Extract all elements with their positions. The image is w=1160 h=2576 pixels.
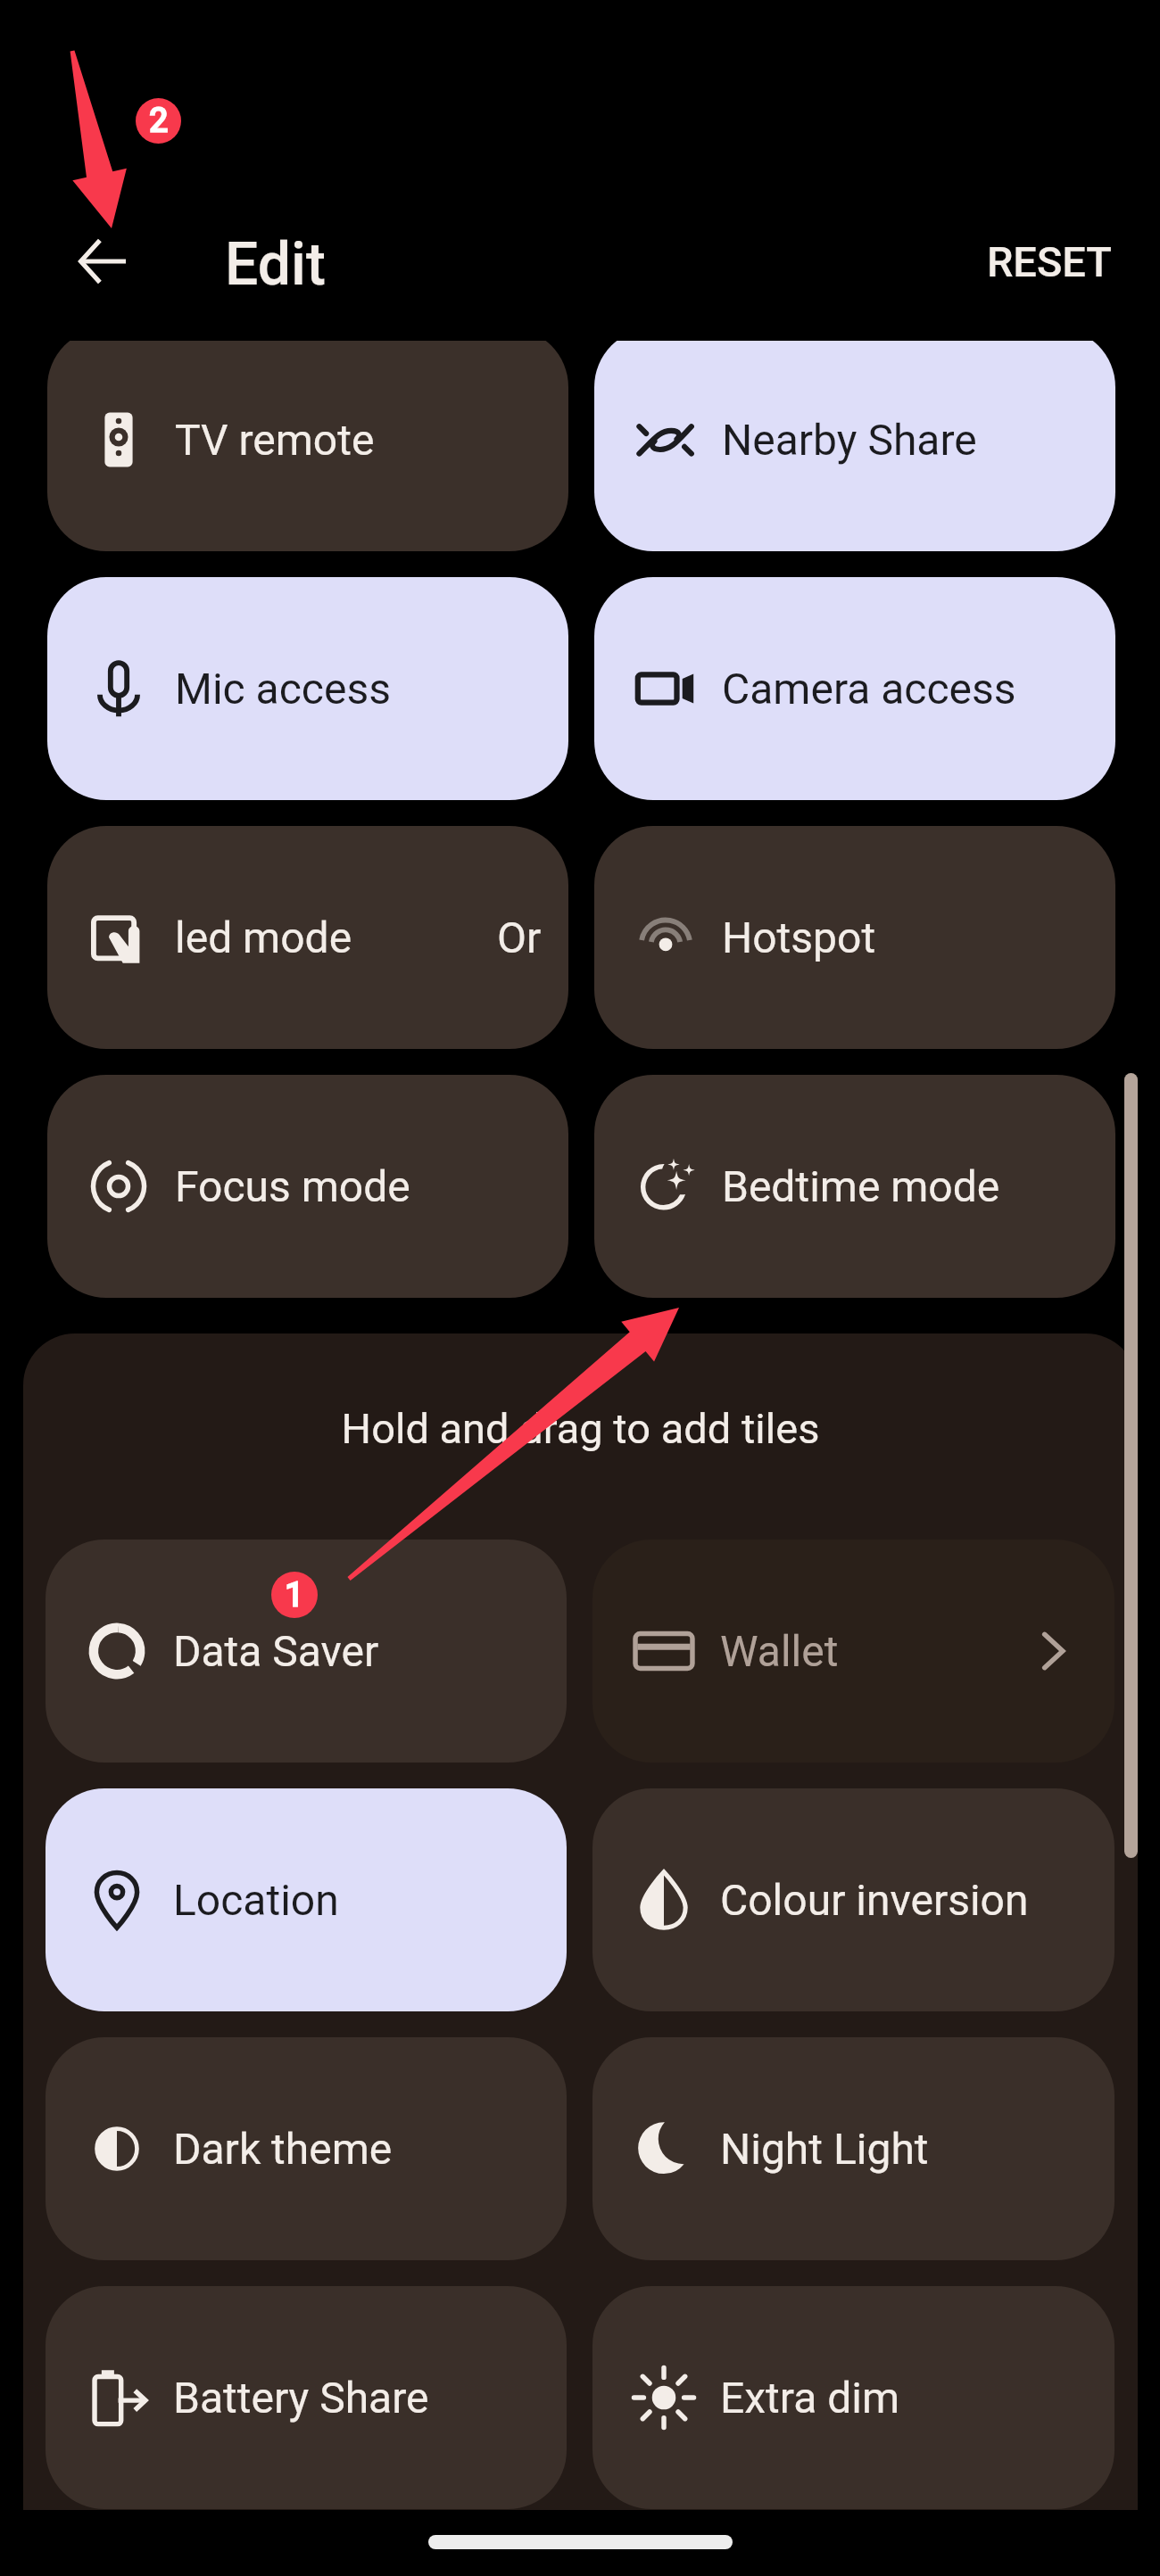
staticText: Or bbox=[497, 912, 542, 962]
button[interactable]: Data Saver bbox=[46, 1540, 567, 1763]
staticText: led mode bbox=[175, 912, 352, 962]
button[interactable]: Night Light bbox=[592, 2037, 1114, 2260]
staticText: Night Light bbox=[720, 2124, 929, 2174]
button[interactable]: Dark theme bbox=[46, 2037, 567, 2260]
button[interactable]: Battery Share bbox=[46, 2286, 567, 2509]
staticText: RESET bbox=[987, 237, 1112, 286]
staticText: Extra dim bbox=[720, 2373, 899, 2423]
staticText: TV remote bbox=[175, 415, 375, 465]
staticText: Dark theme bbox=[173, 2124, 393, 2174]
staticText: Wallet bbox=[720, 1626, 839, 1676]
staticText: Nearby Share bbox=[722, 415, 977, 465]
button[interactable]: Wallet bbox=[592, 1540, 1114, 1763]
button[interactable]: Nearby Share bbox=[594, 341, 1115, 551]
staticText: Battery Share bbox=[173, 2373, 429, 2423]
staticText: Focus mode bbox=[175, 1161, 410, 1211]
staticText: Mic access bbox=[175, 664, 391, 714]
button[interactable]: Extra dim bbox=[592, 2286, 1114, 2509]
button[interactable]: Location bbox=[46, 1788, 567, 2011]
staticText: Edit bbox=[225, 230, 326, 299]
staticText: Camera access bbox=[722, 664, 1016, 714]
staticText: Data Saver bbox=[173, 1626, 379, 1676]
button[interactable]: Back bbox=[63, 222, 142, 301]
staticText: 1 bbox=[285, 1575, 304, 1615]
button[interactable]: Camera access bbox=[594, 577, 1115, 800]
staticText: Location bbox=[173, 1875, 339, 1925]
staticText: Bedtime mode bbox=[722, 1161, 1000, 1211]
button[interactable]: Bedtime mode bbox=[594, 1075, 1115, 1298]
button[interactable]: led mode bbox=[47, 826, 568, 1049]
button[interactable]: Hotspot bbox=[594, 826, 1115, 1049]
button[interactable]: Focus mode bbox=[47, 1075, 568, 1298]
staticText: Colour inversion bbox=[720, 1875, 1029, 1925]
staticText: 2 bbox=[149, 101, 169, 141]
button[interactable]: Mic access bbox=[47, 577, 568, 800]
staticText: Hotspot bbox=[722, 912, 876, 962]
button[interactable]: TV remote bbox=[47, 341, 568, 551]
button[interactable]: Colour inversion bbox=[592, 1788, 1114, 2011]
button[interactable]: RESET bbox=[976, 227, 1123, 297]
staticText: Hold and drag to add tiles bbox=[23, 1404, 1138, 1453]
